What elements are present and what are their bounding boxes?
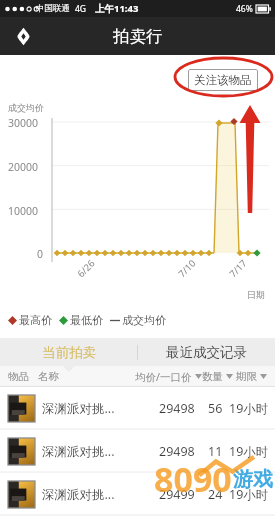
staticText: 中国联通 xyxy=(36,3,70,14)
staticText: 名称 xyxy=(38,370,59,383)
staticText: 10000 xyxy=(8,204,39,218)
staticText: 19小时 xyxy=(229,400,269,417)
staticText: 深渊派对挑... xyxy=(42,443,115,460)
staticText: 29498 xyxy=(159,443,195,460)
button[interactable]: 深渊派对挑... xyxy=(0,387,275,430)
staticText: 4G xyxy=(75,3,87,15)
staticText: 关注该物品 xyxy=(194,73,252,87)
staticText: 20000 xyxy=(8,160,39,174)
staticText: 数量 xyxy=(202,370,223,383)
staticText: 30000 xyxy=(8,116,39,130)
staticText: 19小时 xyxy=(229,443,269,460)
staticText: 29499 xyxy=(159,486,195,503)
staticText: 当前拍卖 xyxy=(42,344,96,361)
staticText: 成交均价 xyxy=(8,102,44,113)
staticText: 均价/一口价 xyxy=(135,370,192,384)
button[interactable]: 最近成交记录 xyxy=(138,338,275,366)
button[interactable]: 关注该物品 xyxy=(188,69,258,91)
staticText: 24 xyxy=(208,486,223,503)
staticText: 游戏 xyxy=(233,467,273,492)
staticText: 46% xyxy=(236,3,253,15)
staticText: 11 xyxy=(208,443,223,460)
staticText: 期限 xyxy=(236,370,257,383)
staticText: 上午11:43 xyxy=(95,2,139,15)
staticText: 日期 xyxy=(247,289,265,300)
staticText: 6/26 xyxy=(74,257,98,280)
staticText: 物品 xyxy=(8,370,29,383)
button[interactable]: 深渊派对挑... xyxy=(0,473,275,516)
staticText: 19小时 xyxy=(229,486,269,503)
staticText: 深渊派对挑... xyxy=(42,400,115,417)
button[interactable]: 当前拍卖 xyxy=(0,338,137,366)
staticText: 7/17 xyxy=(226,257,250,280)
staticText: 深渊派对挑... xyxy=(42,486,115,503)
staticText: 29498 xyxy=(159,400,195,417)
staticText: 成交均价 xyxy=(122,313,166,327)
staticText: 拍卖行 xyxy=(113,26,163,47)
staticText: 56 xyxy=(208,400,223,417)
staticText: 最近成交记录 xyxy=(166,344,247,361)
staticText: 0 xyxy=(37,247,44,261)
staticText: 最高价 xyxy=(19,313,52,327)
button[interactable]: 深渊派对挑... xyxy=(0,430,275,473)
staticText: 最低价 xyxy=(70,313,103,327)
staticText: 7/10 xyxy=(175,257,199,280)
staticText: 8090 xyxy=(154,456,232,502)
button[interactable]: Back xyxy=(6,19,40,53)
